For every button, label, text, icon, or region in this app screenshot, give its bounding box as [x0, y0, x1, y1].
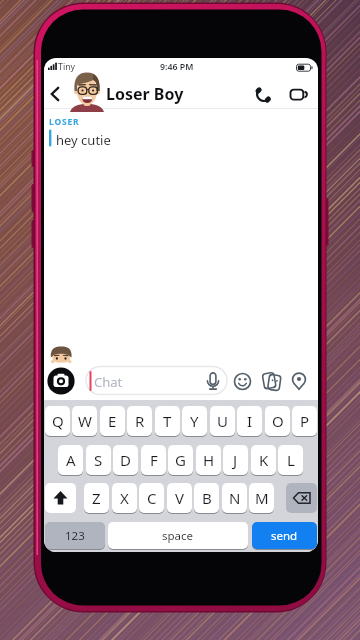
button[interactable]: E [100, 406, 125, 436]
button[interactable] [250, 84, 276, 106]
staticText: O [272, 411, 284, 431]
staticText: T [163, 411, 172, 431]
staticText: M [255, 488, 269, 508]
staticText: I [247, 411, 253, 431]
staticText: L [287, 450, 295, 470]
staticText: V [175, 488, 185, 508]
staticText: Z [92, 488, 101, 508]
staticText: G [175, 450, 186, 470]
staticText: send [271, 528, 298, 544]
staticText: Loser Boy [106, 83, 184, 105]
button[interactable]: D [113, 445, 138, 475]
button[interactable]: C [139, 483, 164, 513]
button[interactable]: X [112, 483, 137, 513]
staticText: N [229, 488, 241, 508]
button[interactable]: P [292, 406, 317, 436]
button[interactable]: T [155, 406, 180, 436]
button[interactable]: K [251, 445, 276, 475]
button[interactable]: H [196, 445, 221, 475]
staticText: R [135, 411, 145, 431]
staticText: D [120, 450, 131, 470]
staticText: W [78, 411, 92, 431]
button[interactable]: S [86, 445, 111, 475]
staticText: K [259, 450, 269, 470]
staticText: E [108, 411, 117, 431]
staticText: S [94, 450, 103, 470]
button[interactable]: I [237, 406, 262, 436]
button[interactable] [86, 366, 227, 394]
staticText: C [147, 488, 157, 508]
button[interactable] [286, 483, 317, 513]
button[interactable]: space [108, 522, 248, 549]
button[interactable]: V [167, 483, 192, 513]
button[interactable]: G [168, 445, 193, 475]
staticText: X [120, 488, 129, 508]
staticText: A [66, 450, 76, 470]
button[interactable] [262, 372, 281, 391]
button[interactable]: L [278, 445, 303, 475]
button[interactable]: Loser Boy [106, 82, 216, 106]
staticText: space [162, 528, 194, 544]
staticText: P [300, 411, 310, 431]
staticText: U [217, 411, 228, 431]
staticText: Chat [94, 373, 123, 391]
button[interactable]: Q [45, 406, 70, 436]
button[interactable]: B [194, 483, 219, 513]
button[interactable]: 123 [45, 522, 105, 549]
button[interactable]: N [222, 483, 247, 513]
staticText: Q [52, 411, 64, 431]
button[interactable]: R [127, 406, 152, 436]
staticText: J [233, 450, 238, 470]
staticText: hey cutie [56, 131, 111, 149]
button[interactable]: O [265, 406, 290, 436]
button[interactable]: F [141, 445, 166, 475]
staticText: Y [190, 411, 199, 431]
button[interactable]: M [249, 483, 274, 513]
button[interactable] [45, 483, 76, 513]
button[interactable] [46, 84, 66, 104]
button[interactable]: J [223, 445, 248, 475]
button[interactable] [286, 84, 312, 106]
staticText: LOSER [49, 116, 80, 128]
staticText: 123 [65, 528, 85, 544]
staticText: B [202, 488, 212, 508]
staticText: 9:46 PM [160, 61, 194, 72]
staticText: H [203, 450, 215, 470]
button[interactable]: A [58, 445, 83, 475]
button[interactable]: send [252, 522, 317, 549]
button[interactable] [290, 371, 308, 390]
button[interactable]: Z [84, 483, 109, 513]
button[interactable]: Y [182, 406, 207, 436]
staticText: F [150, 450, 158, 470]
staticText: Tiny [58, 61, 76, 73]
button[interactable] [234, 372, 252, 390]
button[interactable] [47, 367, 75, 395]
button[interactable]: U [210, 406, 235, 436]
button[interactable]: W [72, 406, 97, 436]
